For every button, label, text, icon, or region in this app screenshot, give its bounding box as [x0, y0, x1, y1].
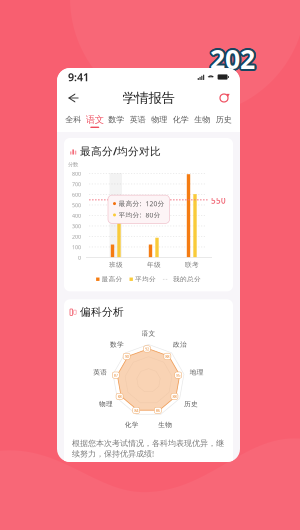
staticText: 550 [211, 195, 226, 206]
staticText: 600 [72, 191, 81, 198]
staticText: 2026 [209, 40, 254, 110]
staticText: 地理 [190, 368, 204, 376]
staticText: 85 [176, 372, 180, 378]
staticText: 2026 [209, 42, 254, 113]
staticText: 2026 [208, 42, 253, 113]
button[interactable]: 数学 [105, 111, 127, 131]
staticText: 84 [134, 408, 138, 413]
staticText: 物理 [99, 400, 113, 408]
button[interactable]: 生物 [191, 111, 213, 131]
staticText: 88 [165, 354, 169, 359]
staticText: 数学 [108, 115, 124, 125]
staticText: 分数 [68, 161, 78, 168]
staticText: 2026 [208, 41, 253, 112]
staticText: 400 [72, 212, 81, 219]
staticText: 87 [114, 372, 118, 378]
staticText: 300 [72, 223, 81, 230]
button[interactable]: 物理 [148, 111, 170, 131]
button[interactable]: 语文 [84, 111, 105, 131]
staticText: 9:41 [68, 70, 89, 84]
staticText: 88 [118, 394, 122, 399]
staticText: 化学 [125, 421, 139, 429]
staticText: 根据您本次考试情况，各科均表现优异，继续努力，保持优异成绩! [72, 438, 224, 459]
staticText: 2026 [211, 42, 256, 113]
staticText: 92 [145, 346, 149, 352]
staticText: 最高分: 120分 [118, 199, 164, 208]
staticText: 100 [72, 244, 81, 251]
staticText: 全科 [65, 115, 81, 125]
staticText: 英语 [130, 115, 146, 125]
staticText: 800 [72, 170, 81, 177]
staticText: 2026 [211, 39, 256, 110]
staticText: 平均分: 80分 [118, 210, 160, 219]
button[interactable]: 全科 [62, 111, 84, 131]
button[interactable]: 历史 [213, 111, 234, 131]
staticText: 班级 [109, 261, 123, 269]
staticText: 86 [156, 408, 160, 413]
staticText: 最高分/均分对比 [80, 144, 161, 158]
staticText: 平均分 [135, 275, 156, 283]
staticText: 偏科分析 [80, 305, 124, 318]
staticText: 90 [125, 354, 129, 359]
staticText: 最高分 [101, 275, 122, 283]
staticText: 我的总分 [173, 275, 201, 283]
staticText: 生物 [194, 115, 210, 125]
staticText: 700 [72, 181, 81, 188]
staticText: 年级 [147, 261, 161, 269]
staticText: 88 [172, 394, 176, 399]
staticText: 200 [72, 233, 81, 240]
staticText: 2026 [209, 39, 254, 110]
staticText: 500 [72, 202, 81, 209]
staticText: 0 [78, 254, 81, 261]
staticText: 2026 [210, 43, 255, 113]
staticText: 英语 [93, 368, 107, 376]
staticText: 2026 [211, 40, 256, 110]
button[interactable]: Refresh [213, 87, 235, 109]
staticText: 学情报告 [122, 90, 174, 106]
staticText: 化学 [173, 115, 189, 125]
staticText: 数学 [110, 340, 124, 349]
staticText: 历史 [216, 115, 232, 125]
staticText: 物理 [151, 115, 167, 125]
staticText: 2026 [208, 40, 253, 111]
staticText: 语文 [86, 114, 104, 125]
staticText: 2026 [209, 43, 254, 113]
staticText: 2026 [212, 42, 257, 113]
button[interactable]: 化学 [170, 111, 191, 131]
staticText: 历史 [184, 400, 198, 408]
staticText: 2026 [212, 41, 257, 112]
staticText: 生物 [158, 421, 172, 429]
staticText: 政治 [173, 340, 187, 349]
staticText: 联考 [185, 261, 199, 269]
staticText: 2026 [211, 43, 256, 113]
button[interactable]: Back [62, 87, 84, 109]
staticText: 2026 [212, 40, 257, 111]
staticText: 2026 [210, 41, 255, 112]
button[interactable]: 英语 [127, 111, 148, 131]
staticText: 语文 [141, 329, 155, 338]
staticText: 2026 [210, 39, 255, 110]
